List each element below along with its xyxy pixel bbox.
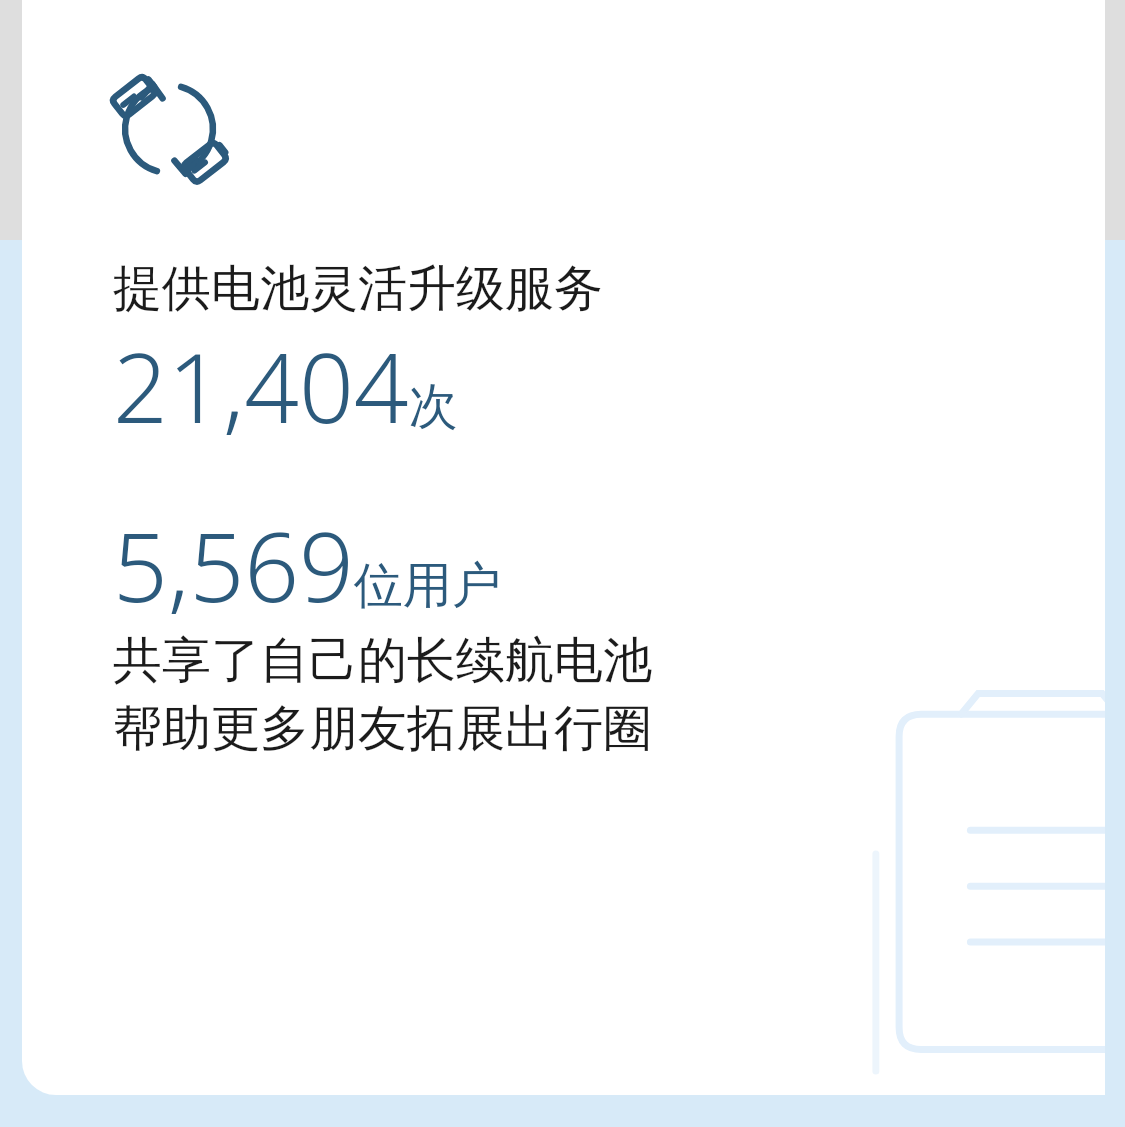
staticText: 共享了自己的长续航电池 帮助更多朋友拓展出行圈 [113, 630, 652, 759]
button[interactable]: 电池灵活升级服务 [110, 70, 228, 188]
staticText: 提供电池灵活升级服务 [113, 258, 603, 320]
staticText: 21,404次 [113, 320, 458, 451]
staticText: 5,569位用户 [113, 499, 501, 630]
